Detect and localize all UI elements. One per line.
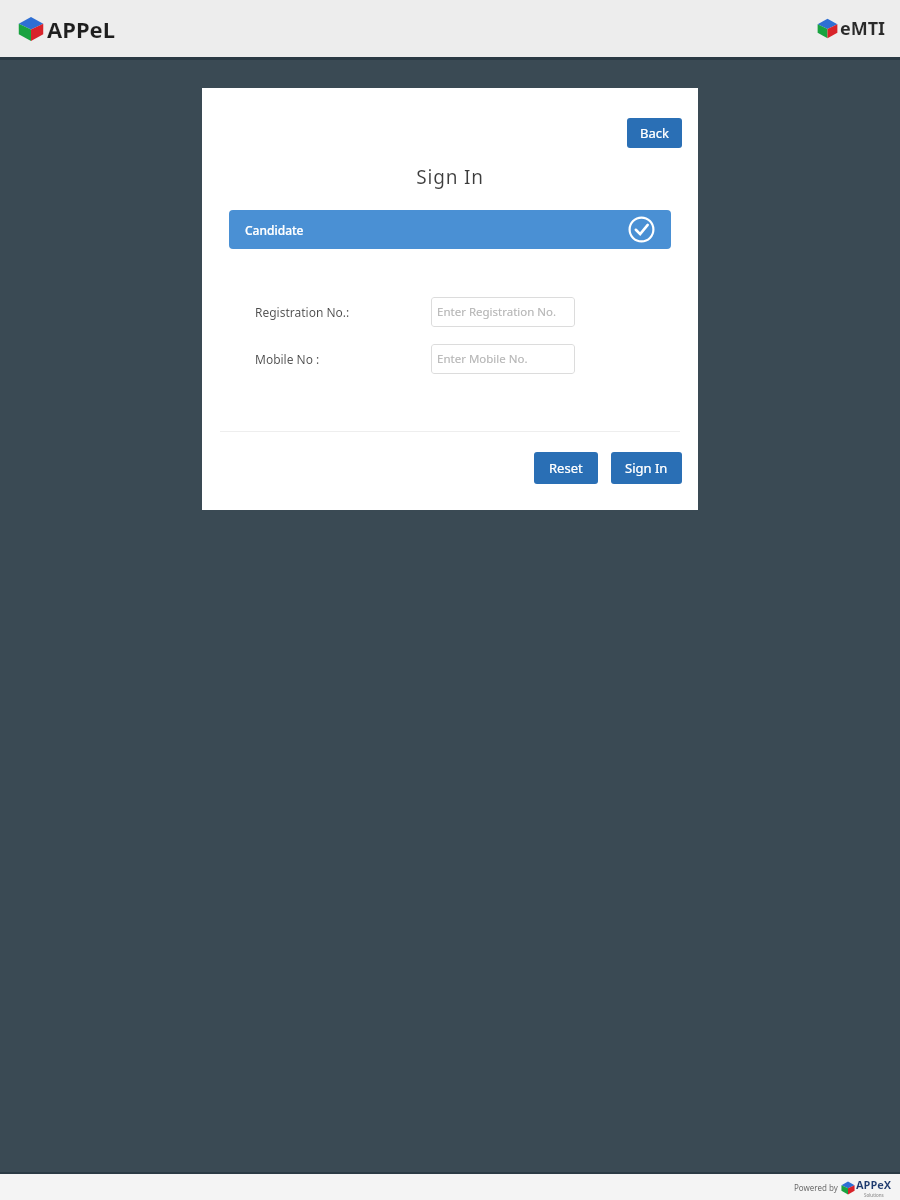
staticText: Candidate — [245, 222, 304, 238]
staticText: Enter Registration No. — [437, 304, 557, 320]
staticText: Sign In — [625, 459, 668, 477]
staticText: Enter Mobile No. — [437, 351, 528, 367]
button[interactable]: eMTI — [817, 16, 886, 41]
staticText: Back — [640, 124, 669, 142]
button[interactable]: Sign In — [611, 452, 682, 484]
staticText: Reset — [549, 459, 583, 477]
button[interactable]: Candidate — [229, 210, 671, 249]
other: Selected — [628, 216, 655, 243]
staticText: Registration No.: — [255, 304, 350, 320]
button[interactable]: Reset — [534, 452, 598, 484]
staticText: Powered by — [794, 1182, 838, 1193]
staticText: APPeL — [47, 14, 115, 44]
button[interactable]: Powered by — [794, 1177, 892, 1198]
staticText: eMTI — [840, 16, 886, 41]
staticText: Solutions — [864, 1192, 884, 1198]
button[interactable]: Enter Mobile No. — [431, 344, 575, 374]
staticText: Mobile No : — [255, 351, 320, 367]
staticText: Sign In — [202, 164, 698, 190]
button[interactable]: Back — [627, 118, 682, 148]
button[interactable]: APPeL — [18, 14, 115, 44]
button[interactable]: Enter Registration No. — [431, 297, 575, 327]
staticText: APPeX — [856, 1177, 892, 1192]
